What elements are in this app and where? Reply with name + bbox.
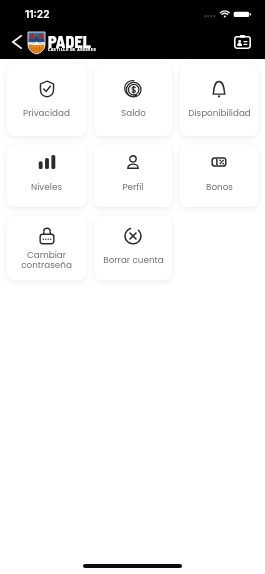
staticText: Disponibilidad bbox=[188, 107, 251, 119]
staticText: Bonos bbox=[206, 181, 233, 193]
button[interactable]: Profile card bbox=[229, 29, 255, 55]
staticText: CASTILLO DE AGÜIMES bbox=[48, 47, 97, 52]
staticText: 11:22 bbox=[25, 8, 50, 20]
staticText: Perfil bbox=[122, 181, 144, 193]
button[interactable]: Bonos bbox=[180, 145, 258, 207]
button[interactable]: Privacidad bbox=[7, 64, 86, 136]
button[interactable]: Perfil bbox=[94, 145, 172, 207]
button[interactable]: Niveles bbox=[7, 145, 86, 207]
staticText: Borrar cuenta bbox=[103, 254, 164, 266]
staticText: Niveles bbox=[31, 181, 62, 193]
button[interactable]: Saldo bbox=[94, 64, 172, 136]
staticText: PADEL bbox=[48, 32, 91, 51]
staticText: Cambiar contraseña bbox=[21, 249, 72, 271]
staticText: Privacidad bbox=[23, 107, 70, 119]
staticText: Saldo bbox=[121, 107, 146, 119]
button[interactable]: Disponibilidad bbox=[180, 64, 258, 136]
button[interactable]: Back bbox=[3, 28, 30, 55]
button[interactable]: Cambiar contraseña bbox=[7, 216, 86, 280]
button[interactable]: Borrar cuenta bbox=[94, 216, 172, 280]
